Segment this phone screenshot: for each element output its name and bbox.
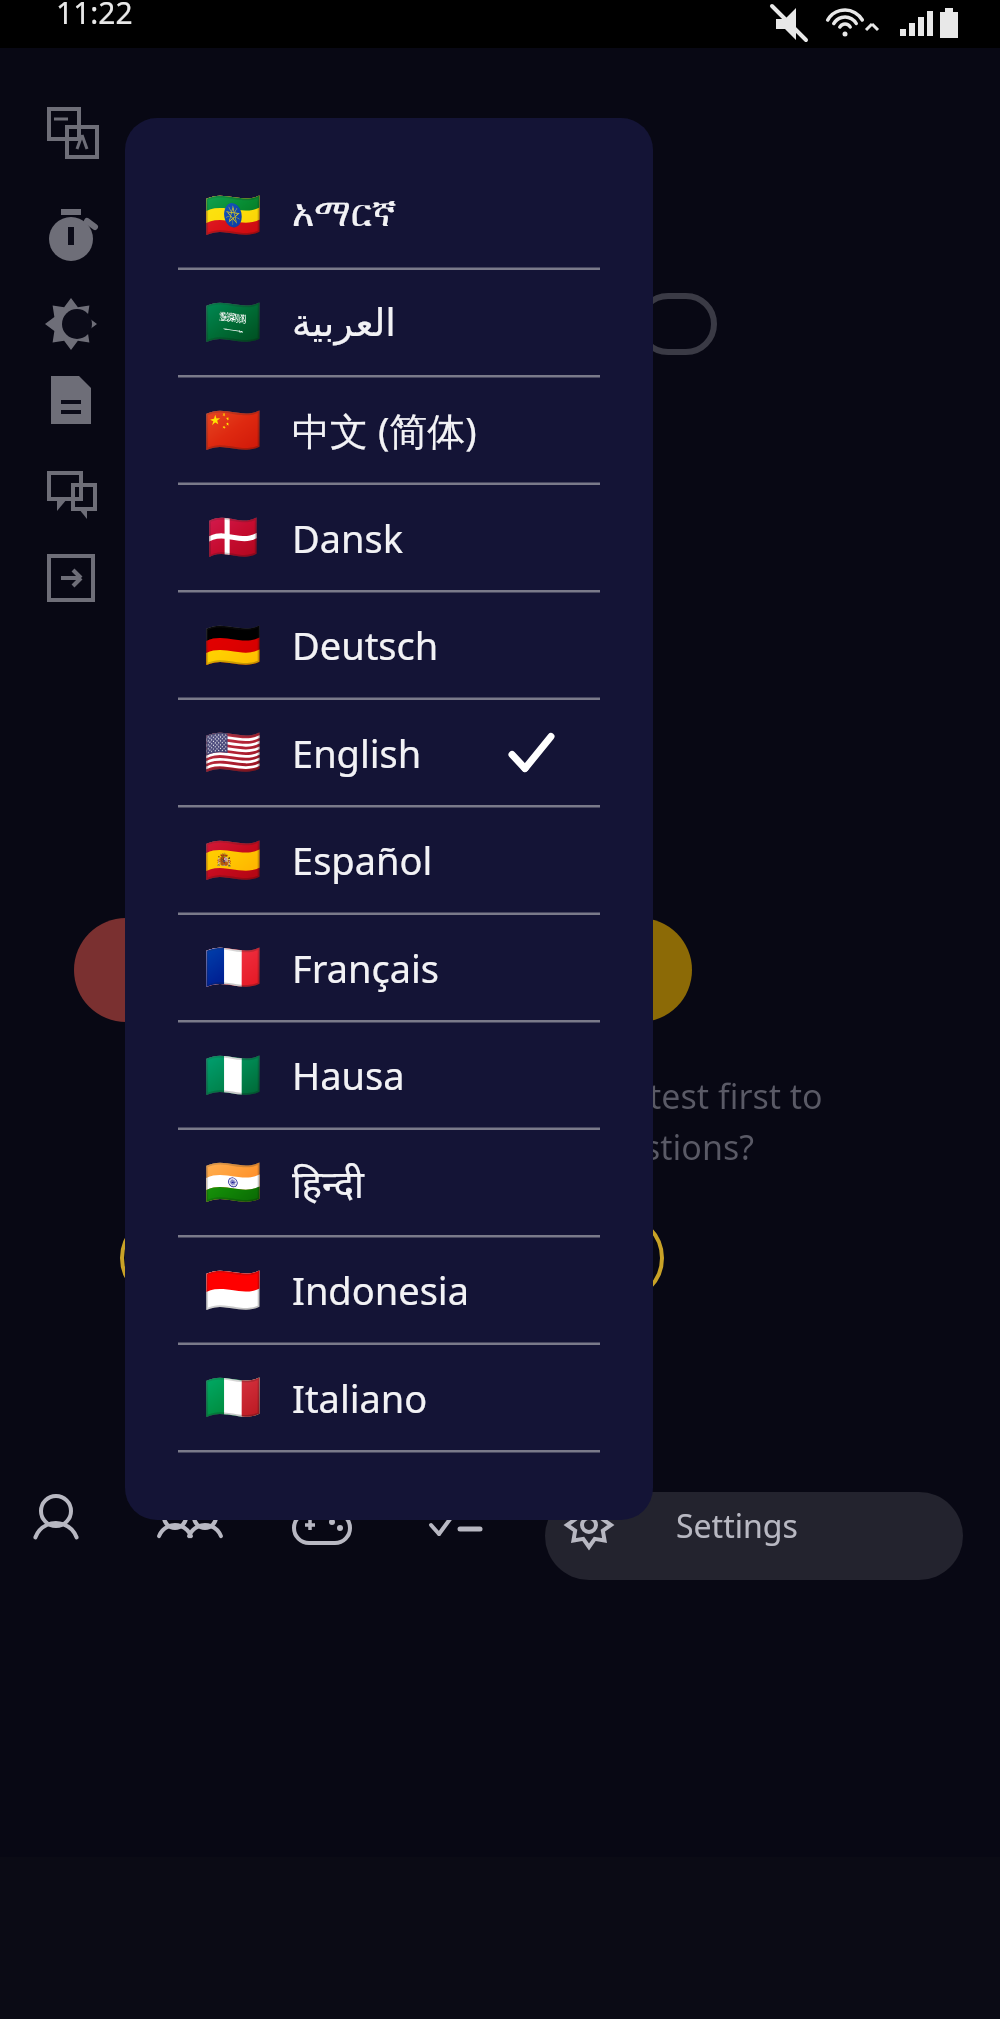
staticText: 🇳🇬 xyxy=(204,1048,262,1102)
staticText: 🇮🇳 xyxy=(204,1155,262,1209)
staticText: English xyxy=(292,727,422,779)
staticText: العربية xyxy=(292,301,396,345)
button[interactable] xyxy=(125,269,653,377)
staticText: Italiano xyxy=(292,1372,428,1424)
staticText: 🇸🇦 xyxy=(204,295,262,349)
button[interactable]: Friends xyxy=(133,1478,266,1588)
staticText: 🇩🇪 xyxy=(204,618,262,672)
button[interactable] xyxy=(125,1021,653,1129)
staticText: 🇪🇹 xyxy=(204,188,262,242)
staticText: 🇫🇷 xyxy=(204,940,262,994)
staticText: 11:22 xyxy=(56,0,133,33)
button[interactable] xyxy=(125,806,653,914)
staticText: 🇪🇸 xyxy=(204,833,262,887)
staticText: 🇩🇰 xyxy=(204,510,262,564)
staticText: 中文 (简体) xyxy=(292,404,477,456)
button[interactable] xyxy=(125,1129,653,1237)
staticText: Settings xyxy=(676,1504,798,1548)
staticText: Dansk xyxy=(292,512,404,564)
staticText: Deutsch xyxy=(292,619,439,671)
button[interactable]: Games xyxy=(266,1478,399,1588)
staticText: 🇮🇹 xyxy=(204,1370,262,1424)
button[interactable]: Settings xyxy=(545,1492,963,1580)
button[interactable] xyxy=(125,914,653,1022)
staticText: አማርኛ xyxy=(292,196,397,234)
button[interactable]: Profile xyxy=(0,1478,133,1588)
staticText: 🇺🇸 xyxy=(204,725,262,779)
staticText: receive personalised questions? xyxy=(247,1124,754,1170)
button[interactable] xyxy=(125,699,653,807)
staticText: Do you want to complete the test first t… xyxy=(178,1073,823,1119)
button[interactable] xyxy=(125,591,653,699)
button[interactable] xyxy=(125,484,653,592)
button[interactable] xyxy=(125,376,653,484)
staticText: Hausa xyxy=(292,1049,405,1101)
button[interactable] xyxy=(125,161,653,269)
button[interactable] xyxy=(125,1344,653,1452)
button[interactable]: Tasks xyxy=(399,1478,532,1588)
button[interactable] xyxy=(125,1236,653,1344)
staticText: Indonesia xyxy=(292,1264,469,1316)
staticText: 🇨🇳 xyxy=(204,403,262,457)
staticText: हिन्दी xyxy=(292,1157,364,1209)
staticText: 🇮🇩 xyxy=(204,1263,262,1317)
staticText: Español xyxy=(292,834,433,886)
staticText: Français xyxy=(292,942,440,994)
